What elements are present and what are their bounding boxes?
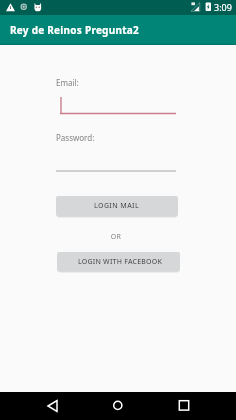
staticText: Email: — [56, 77, 79, 88]
staticText: Rey de Reinos Pregunta2 — [10, 23, 139, 37]
staticText: 3:09 — [214, 1, 232, 13]
button[interactable]: Email field — [55, 93, 181, 117]
button[interactable]: Back — [30, 392, 74, 420]
button[interactable]: Home — [96, 392, 140, 420]
button[interactable]: Password field — [55, 155, 181, 175]
button[interactable]: LOGIN MAIL — [56, 196, 178, 216]
button[interactable]: Recent apps — [162, 392, 206, 420]
button[interactable]: LOGIN WITH FACEBOOK — [57, 252, 180, 271]
staticText: Password: — [56, 132, 95, 143]
staticText: LOGIN WITH FACEBOOK — [78, 257, 163, 267]
staticText: LOGIN MAIL — [94, 201, 140, 211]
staticText: OR — [0, 232, 234, 242]
